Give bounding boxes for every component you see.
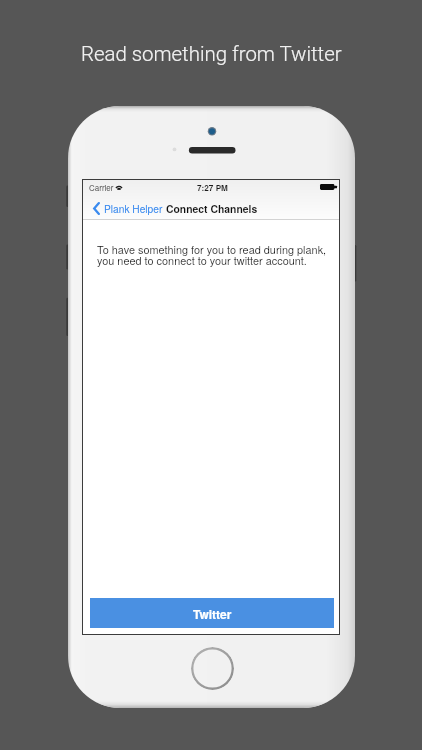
staticText: Carrier: [89, 182, 114, 193]
button[interactable]: Twitter: [90, 598, 334, 628]
button[interactable]: Home: [191, 647, 234, 690]
staticText: Twitter: [193, 605, 232, 622]
staticText: 7:27 PM: [197, 182, 228, 194]
staticText: To have something for you to read during…: [97, 241, 327, 257]
staticText: you need to connect to your twitter acco…: [97, 252, 307, 268]
staticText: Connect Channels: [166, 201, 258, 216]
button[interactable]: Plank Helper: [93, 201, 159, 216]
staticText: Plank Helper: [104, 201, 163, 216]
staticText: Read something from Twitter: [81, 42, 342, 66]
